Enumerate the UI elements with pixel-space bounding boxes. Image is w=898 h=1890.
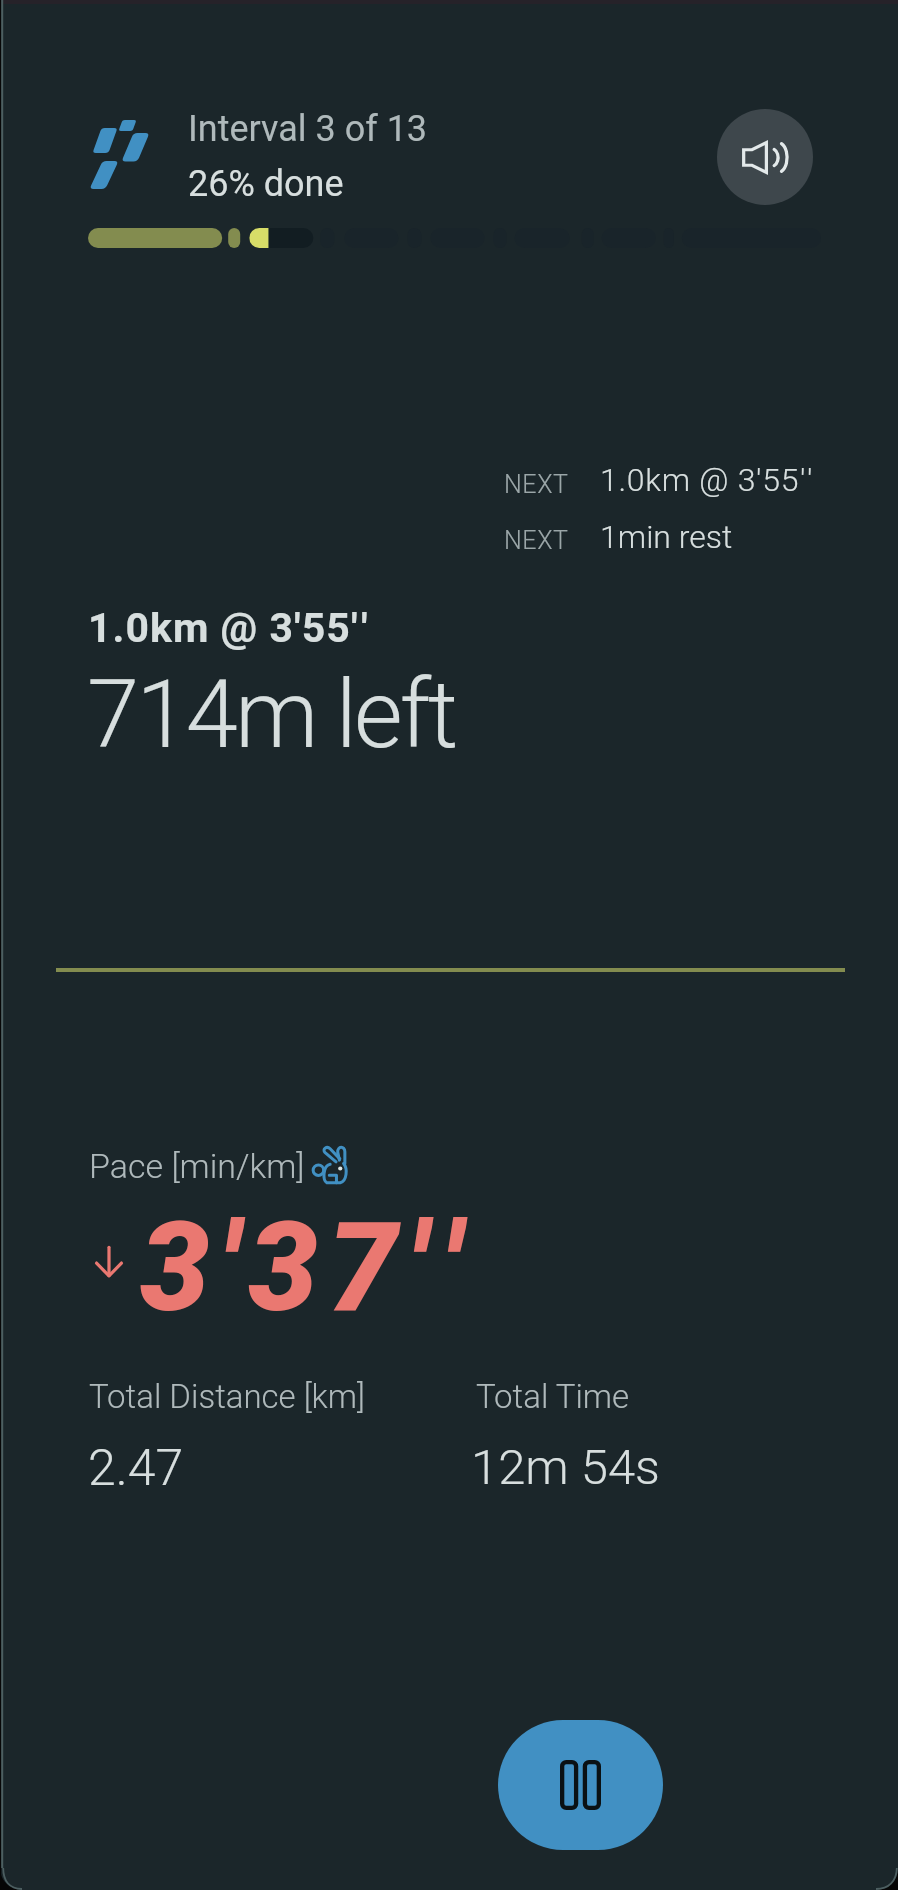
staticText: Pace [min/km] [89, 1146, 305, 1186]
staticText: 714m left [87, 660, 456, 770]
staticText: 1.0km @ 3'55 [600, 461, 800, 499]
staticText: 26% done [188, 163, 344, 205]
staticText: ' [442, 1195, 471, 1340]
staticText: 2.47 [88, 1439, 184, 1498]
button[interactable]: Audio cues [717, 109, 813, 205]
staticText: Interval 3 of 13 [188, 108, 428, 150]
staticText: ' [351, 604, 359, 652]
staticText: ' [361, 604, 369, 652]
staticText: NEXT [504, 526, 569, 555]
button[interactable]: Pause [498, 1720, 663, 1850]
staticText: NEXT [504, 470, 569, 499]
staticText: 1min rest [600, 518, 733, 556]
staticText: 1.0km @ 3'55 [88, 604, 351, 652]
staticText: ' [408, 1195, 437, 1340]
staticText: ' [807, 461, 814, 499]
staticText: 3'37 [140, 1195, 408, 1340]
staticText: Total Time [476, 1377, 630, 1416]
staticText: Total Distance [km] [89, 1377, 365, 1416]
staticText: 12m 54s [471, 1439, 660, 1496]
staticText: ' [800, 461, 807, 499]
